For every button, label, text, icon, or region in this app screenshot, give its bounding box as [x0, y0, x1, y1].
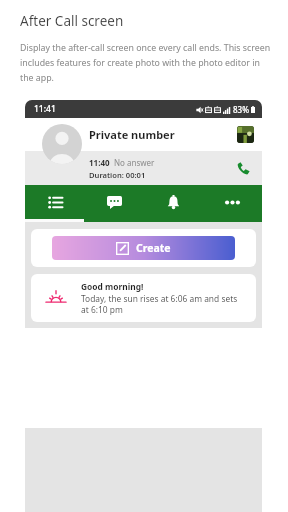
button[interactable]: Create: [52, 236, 235, 260]
staticText: 83%: [233, 104, 249, 115]
button[interactable]: Call log: [25, 185, 85, 219]
button[interactable]: Notifications: [144, 185, 203, 219]
button[interactable]: More options: [203, 185, 262, 219]
button[interactable]: Contact photo: [42, 124, 82, 164]
staticText: Private number: [89, 127, 175, 142]
button[interactable]: Messages: [85, 185, 144, 219]
staticText: 11:41: [34, 103, 56, 115]
button[interactable]: Good morning!: [31, 274, 256, 322]
staticText: 11:40: [89, 157, 110, 168]
staticText: After Call screen: [20, 12, 124, 30]
staticText: No answer: [114, 157, 155, 168]
button[interactable]: Call back: [233, 158, 253, 178]
staticText: Good morning!: [81, 281, 144, 292]
button[interactable]: App icon: [237, 126, 254, 143]
staticText: Create: [136, 241, 171, 255]
staticText: Display the after-call screen once every…: [20, 42, 272, 84]
staticText: Duration: 00:01: [89, 170, 146, 180]
staticText: Today, the sun rises at 6:06 am and sets…: [81, 293, 244, 315]
